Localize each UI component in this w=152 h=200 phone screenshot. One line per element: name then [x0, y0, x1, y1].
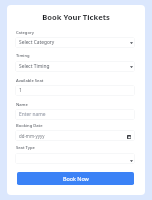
other: Open category dropdown — [130, 42, 133, 44]
staticText: Category — [16, 30, 34, 36]
button[interactable]: dd-mm-yyyy — [15, 130, 135, 141]
staticText: 1 — [19, 87, 22, 94]
button[interactable]: Select Timing — [15, 61, 135, 72]
button[interactable]: Select Category — [15, 37, 135, 48]
staticText: Enter name — [19, 111, 46, 118]
staticText: Booking Date — [16, 123, 43, 129]
staticText: Name — [16, 102, 28, 108]
staticText: Book Now — [63, 175, 89, 182]
button[interactable]: Enter name — [15, 109, 135, 120]
staticText: dd-mm-yyyy — [19, 133, 45, 139]
button[interactable]: Book Now — [17, 172, 134, 185]
button[interactable]: 1 — [15, 85, 135, 96]
button[interactable]: Open seat type dropdown — [15, 153, 135, 164]
staticText: Available Seat — [16, 78, 44, 84]
staticText: Select Category — [19, 39, 55, 46]
other: Pick date — [127, 135, 131, 139]
other: Open seat type dropdown — [130, 160, 133, 162]
staticText: Select Timing — [19, 63, 50, 70]
other: Open timing dropdown — [130, 66, 133, 68]
staticText: Timing — [16, 53, 30, 59]
staticText: Book Your Tickets — [7, 12, 145, 22]
staticText: Seat Type — [16, 145, 35, 151]
